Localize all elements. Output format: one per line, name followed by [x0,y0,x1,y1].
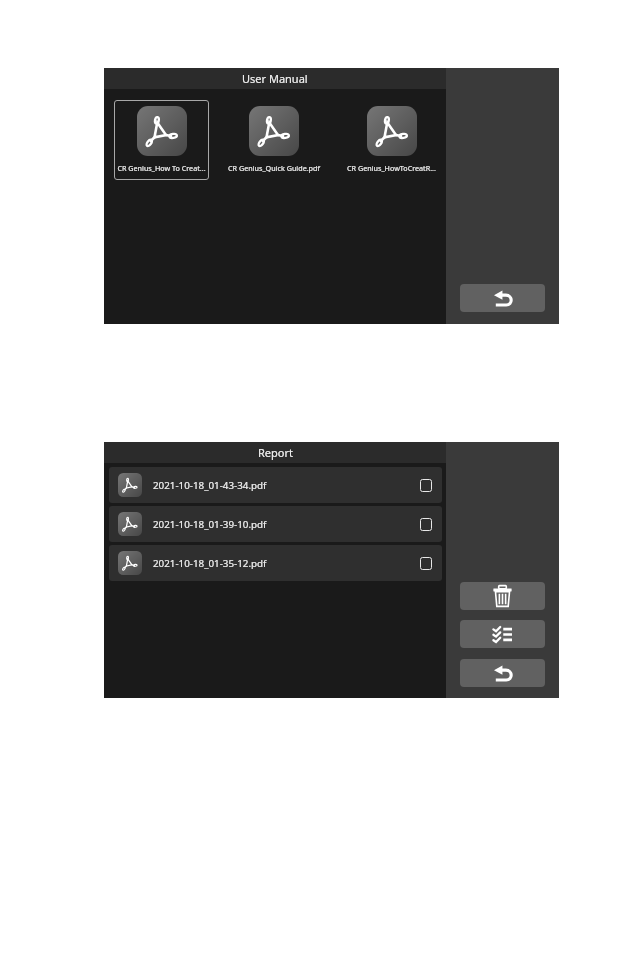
button[interactable]: Back [460,284,545,312]
button[interactable]: CR Genius_How To Creat... [114,100,209,180]
staticText: 2021-10-18_01-43-34.pdf [153,479,267,492]
staticText: CR Genius_How To Creat... [117,163,206,173]
button[interactable]: CR Genius_Quick Guide.pdf [226,100,321,180]
other: Delete [493,585,512,607]
button[interactable]: Delete [460,582,545,610]
staticText: User Manual [242,71,308,86]
staticText: CR Genius_Quick Guide.pdf [228,163,320,173]
button[interactable]: 2021-10-18_01-35-12.pdf [109,545,442,581]
button[interactable]: CR Genius_HowToCreatR... [344,100,439,180]
other: Select all [493,627,512,642]
other: Back [494,290,512,307]
staticText: 2021-10-18_01-35-12.pdf [153,557,267,570]
staticText: CR Genius_HowToCreatR... [347,163,436,173]
staticText: Report [258,445,293,460]
other: Back [494,665,512,682]
button[interactable]: Select all [460,620,545,648]
button[interactable]: 2021-10-18_01-43-34.pdf [109,467,442,503]
staticText: 2021-10-18_01-39-10.pdf [153,518,267,531]
button[interactable]: Back [460,659,545,687]
button[interactable]: 2021-10-18_01-39-10.pdf [109,506,442,542]
